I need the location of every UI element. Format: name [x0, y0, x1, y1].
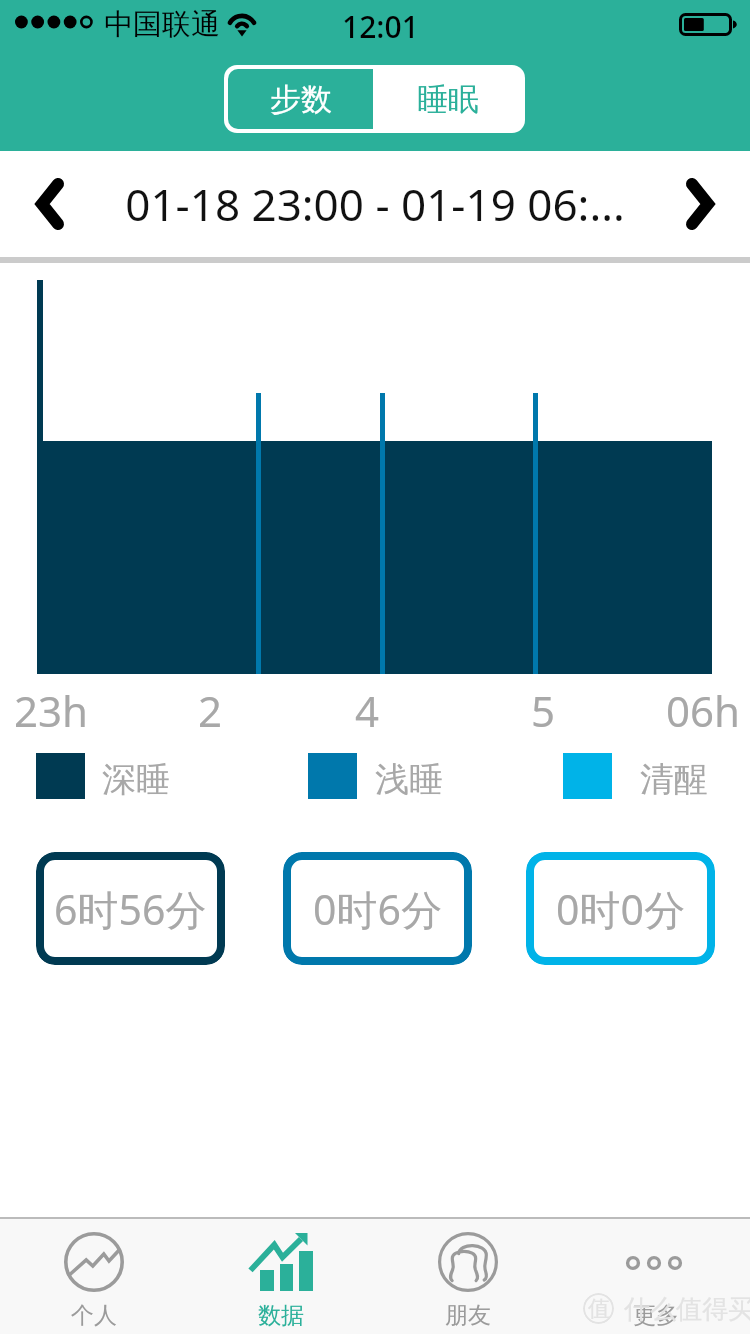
button[interactable]: Previous	[0, 151, 100, 257]
staticText: 更多	[633, 1301, 679, 1330]
button[interactable]: 朋友	[374, 1219, 562, 1334]
button[interactable]: 0时6分	[283, 852, 472, 965]
button[interactable]: 个人	[0, 1219, 187, 1334]
staticText: 清醒	[640, 758, 708, 801]
staticText: 值	[588, 1295, 610, 1323]
staticText: 中国联通	[104, 6, 220, 43]
staticText: 01-18 23:00 - 01-19 06:...	[100, 174, 650, 234]
staticText: 朋友	[445, 1301, 491, 1330]
staticText: 23h	[14, 682, 89, 739]
button[interactable]: 数据	[187, 1219, 374, 1334]
button[interactable]: 步数	[228, 69, 373, 129]
staticText: 06h	[666, 682, 741, 739]
button[interactable]: 更多	[562, 1219, 750, 1334]
staticText: 12:01	[342, 6, 419, 47]
staticText: 2	[198, 682, 223, 739]
staticText: 睡眠	[417, 80, 479, 119]
button[interactable]: 0时0分	[526, 852, 715, 965]
button[interactable]: 睡眠	[375, 69, 521, 129]
staticText: 深睡	[102, 758, 170, 801]
staticText: 5	[531, 682, 556, 739]
staticText: 什么值得买	[624, 1293, 750, 1326]
staticText: 步数	[270, 80, 332, 119]
staticText: 6时56分	[54, 881, 207, 937]
staticText: 0时0分	[556, 881, 685, 937]
staticText: 浅睡	[375, 758, 443, 801]
staticText: 0时6分	[313, 881, 442, 937]
staticText: 4	[355, 682, 380, 739]
staticText: 个人	[71, 1301, 117, 1330]
button[interactable]: 6时56分	[36, 852, 225, 965]
button[interactable]: Next	[650, 151, 750, 257]
staticText: 数据	[258, 1301, 304, 1330]
